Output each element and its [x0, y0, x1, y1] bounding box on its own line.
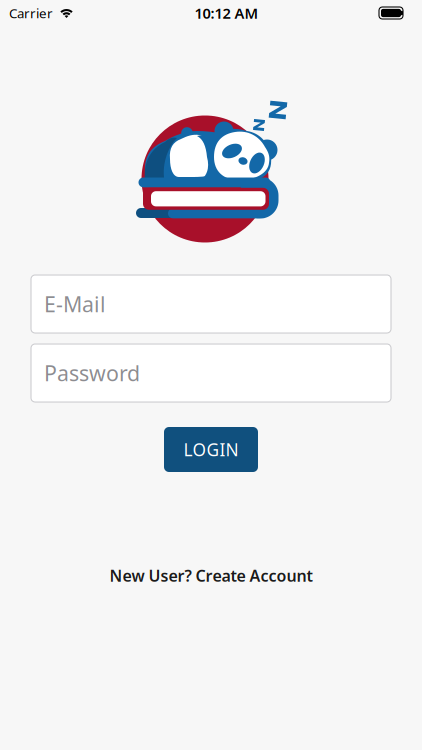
staticText: Carrier	[9, 4, 53, 22]
button[interactable]: LOGIN	[164, 427, 258, 472]
staticText: LOGIN	[183, 438, 238, 461]
staticText: Password	[44, 359, 140, 387]
button[interactable]: New User? Create Account	[109, 565, 312, 586]
staticText: 10:12 AM	[194, 3, 258, 23]
staticText: New User? Create Account	[109, 565, 312, 586]
staticText: E-Mail	[44, 290, 106, 318]
